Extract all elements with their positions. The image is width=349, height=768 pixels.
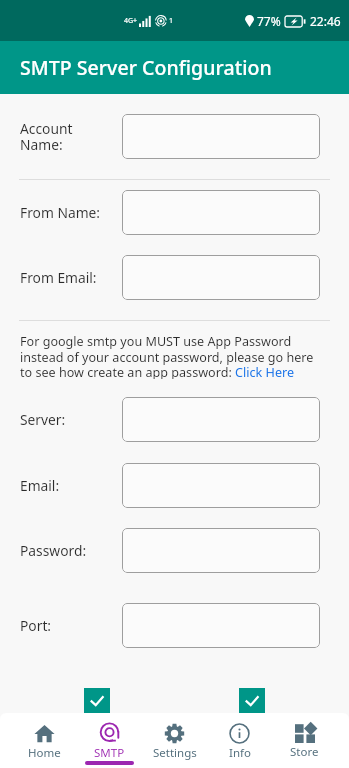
button[interactable] bbox=[122, 190, 320, 235]
staticText: From Email: bbox=[20, 268, 122, 287]
staticText: Account Name: bbox=[20, 119, 122, 154]
button[interactable]: Store bbox=[272, 713, 337, 768]
button[interactable] bbox=[122, 463, 320, 508]
button[interactable]: Info bbox=[207, 713, 272, 768]
staticText: Info bbox=[229, 745, 251, 761]
button[interactable] bbox=[122, 603, 320, 648]
staticText: Email: bbox=[20, 476, 122, 495]
staticText: From Name: bbox=[20, 203, 122, 222]
button[interactable] bbox=[122, 114, 320, 159]
staticText: 4G+ bbox=[124, 16, 138, 26]
button[interactable] bbox=[122, 255, 320, 300]
button[interactable]: Home bbox=[12, 713, 77, 768]
staticText: Port: bbox=[20, 616, 122, 635]
button[interactable] bbox=[122, 528, 320, 573]
staticText: SMTP bbox=[94, 745, 125, 761]
button[interactable]: Confirm bbox=[239, 688, 265, 713]
button[interactable]: Settings bbox=[142, 713, 207, 768]
button[interactable] bbox=[122, 397, 320, 442]
staticText: Server: bbox=[20, 410, 122, 429]
staticText: Store bbox=[290, 744, 319, 760]
staticText: 22:46 bbox=[310, 13, 341, 29]
staticText: Home bbox=[28, 745, 61, 761]
staticText: For google smtp you MUST use App Passwor… bbox=[20, 333, 321, 379]
button[interactable]: SMTP bbox=[77, 713, 142, 768]
staticText: 77% bbox=[257, 13, 281, 29]
staticText: Password: bbox=[20, 541, 122, 560]
button[interactable]: Confirm bbox=[84, 688, 110, 713]
staticText: SMTP Server Configuration bbox=[20, 54, 272, 81]
staticText: 1 bbox=[169, 16, 174, 26]
staticText: Settings bbox=[153, 745, 197, 761]
